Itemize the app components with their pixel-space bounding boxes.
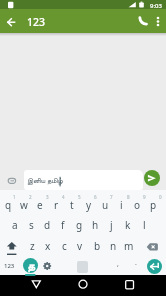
button[interactable]: r bbox=[48, 196, 64, 214]
staticText: 4 bbox=[62, 194, 65, 200]
button[interactable]: y bbox=[81, 196, 97, 214]
button[interactable] bbox=[2, 12, 20, 30]
button[interactable]: b bbox=[89, 237, 105, 255]
button[interactable]: e bbox=[32, 196, 48, 214]
button[interactable]: m bbox=[121, 237, 137, 255]
staticText: z bbox=[30, 239, 35, 253]
staticText: g bbox=[76, 218, 83, 232]
button[interactable]: o bbox=[129, 196, 145, 214]
button[interactable] bbox=[150, 12, 166, 28]
button[interactable] bbox=[3, 238, 22, 256]
button[interactable]: x bbox=[40, 237, 56, 255]
staticText: k bbox=[125, 218, 131, 232]
staticText: 8 bbox=[127, 194, 130, 200]
staticText: b bbox=[94, 239, 101, 253]
staticText: 3 bbox=[46, 194, 49, 200]
staticText: p bbox=[150, 198, 157, 212]
button[interactable]: . bbox=[131, 257, 141, 269]
button[interactable]: s bbox=[23, 216, 39, 234]
staticText: 123 bbox=[4, 262, 15, 270]
staticText: w bbox=[20, 198, 28, 212]
staticText: a bbox=[12, 218, 18, 232]
staticText: 1 bbox=[13, 194, 16, 200]
staticText: s bbox=[29, 218, 34, 232]
button[interactable]: a bbox=[7, 216, 23, 234]
button[interactable] bbox=[26, 276, 46, 296]
staticText: v bbox=[77, 239, 83, 253]
staticText: 2 bbox=[29, 194, 32, 200]
staticText: 0 bbox=[159, 194, 162, 200]
button[interactable]: w bbox=[16, 196, 32, 214]
staticText: d bbox=[44, 218, 51, 232]
button[interactable]: i bbox=[113, 196, 129, 214]
button[interactable]: g bbox=[71, 216, 87, 234]
staticText: c bbox=[62, 239, 67, 253]
staticText: . bbox=[135, 258, 137, 268]
button[interactable] bbox=[77, 261, 88, 273]
staticText: i bbox=[120, 198, 123, 212]
button[interactable]: k bbox=[120, 216, 136, 234]
staticText: 7 bbox=[110, 194, 113, 200]
staticText: 9:03 bbox=[150, 2, 162, 10]
staticText: j bbox=[110, 218, 113, 232]
staticText: r bbox=[54, 198, 59, 212]
button[interactable]: v bbox=[72, 237, 88, 255]
button[interactable] bbox=[145, 238, 163, 256]
button[interactable]: c bbox=[56, 237, 72, 255]
staticText: 5 bbox=[78, 194, 81, 200]
staticText: u bbox=[102, 198, 109, 212]
button[interactable]: த bbox=[23, 258, 38, 273]
staticText: q bbox=[5, 198, 12, 212]
button[interactable]: q bbox=[0, 196, 16, 214]
button[interactable]: 123 bbox=[0, 260, 18, 272]
button[interactable]: z bbox=[24, 237, 40, 255]
staticText: 9 bbox=[143, 194, 146, 200]
staticText: y bbox=[86, 198, 92, 212]
button[interactable] bbox=[134, 12, 152, 30]
staticText: n bbox=[110, 239, 117, 253]
button[interactable]: u bbox=[97, 196, 113, 214]
button[interactable]: h bbox=[87, 216, 103, 234]
button[interactable] bbox=[147, 259, 162, 274]
staticText: த bbox=[27, 260, 35, 272]
button[interactable] bbox=[73, 276, 93, 296]
staticText: o bbox=[134, 198, 141, 212]
button[interactable]: p bbox=[145, 196, 161, 214]
staticText: இனிய தமிழ் bbox=[27, 176, 63, 186]
button[interactable]: , bbox=[113, 258, 123, 270]
button[interactable]: j bbox=[103, 216, 119, 234]
button[interactable]: n bbox=[105, 237, 121, 255]
staticText: 6 bbox=[94, 194, 97, 200]
staticText: h bbox=[92, 218, 99, 232]
staticText: , bbox=[117, 259, 119, 269]
button[interactable] bbox=[40, 259, 55, 274]
button[interactable]: f bbox=[55, 216, 71, 234]
button[interactable]: d bbox=[39, 216, 55, 234]
button[interactable] bbox=[3, 172, 20, 189]
button[interactable]: t bbox=[64, 196, 80, 214]
staticText: f bbox=[61, 218, 65, 232]
staticText: m bbox=[124, 239, 134, 253]
button[interactable] bbox=[24, 170, 143, 190]
staticText: l bbox=[143, 218, 146, 232]
button[interactable] bbox=[144, 170, 160, 186]
staticText: x bbox=[45, 239, 51, 253]
button[interactable] bbox=[119, 276, 139, 296]
staticText: t bbox=[70, 198, 74, 212]
staticText: 123 bbox=[27, 15, 46, 29]
staticText: e bbox=[37, 198, 43, 212]
button[interactable]: l bbox=[136, 216, 152, 234]
